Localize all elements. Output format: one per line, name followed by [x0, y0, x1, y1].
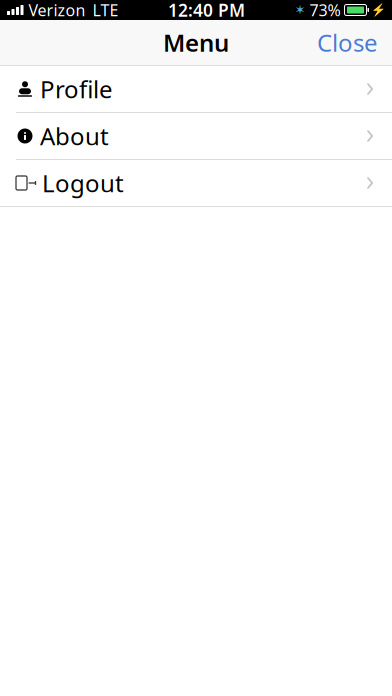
staticText: ✶ — [294, 2, 305, 17]
button[interactable]: About — [0, 113, 392, 159]
button[interactable]: Close — [303, 19, 392, 66]
staticText: About — [40, 120, 109, 152]
staticText: ⚡ — [371, 3, 386, 17]
staticText: LTE — [92, 0, 118, 21]
button[interactable]: Logout — [0, 160, 392, 206]
staticText: 12:40 PM — [168, 0, 245, 21]
staticText: 73% — [309, 0, 340, 21]
staticText: Logout — [42, 167, 124, 199]
staticText: Profile — [40, 73, 113, 105]
staticText: Close — [317, 27, 378, 58]
staticText: Menu — [163, 27, 229, 58]
staticText: Verizon — [28, 0, 85, 21]
button[interactable]: Profile — [0, 66, 392, 112]
